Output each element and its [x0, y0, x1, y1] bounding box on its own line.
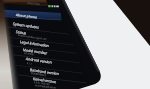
button[interactable]: SAMSUNG [0, 0, 150, 89]
staticText: Model number [23, 47, 48, 55]
staticText: Baseband version [30, 67, 60, 76]
staticText: Status [16, 29, 27, 35]
staticText: SAMSUNG [27, 1, 41, 6]
staticText: Phone number, signal, etc. [18, 33, 48, 40]
staticText: About phone [16, 12, 38, 18]
staticText: Android version [26, 56, 53, 65]
staticText: Legal information [20, 39, 50, 48]
staticText: Kernel version [33, 76, 57, 84]
staticText: I9300XXEMC2 [31, 71, 47, 76]
staticText: 4.1.1 [27, 61, 33, 65]
staticText: GT-I9300 [24, 51, 35, 55]
staticText: 3.0.31-566143 [34, 80, 50, 85]
staticText: System updates [13, 21, 40, 30]
staticText: se.infra@SEP-60 #1 [35, 83, 57, 89]
